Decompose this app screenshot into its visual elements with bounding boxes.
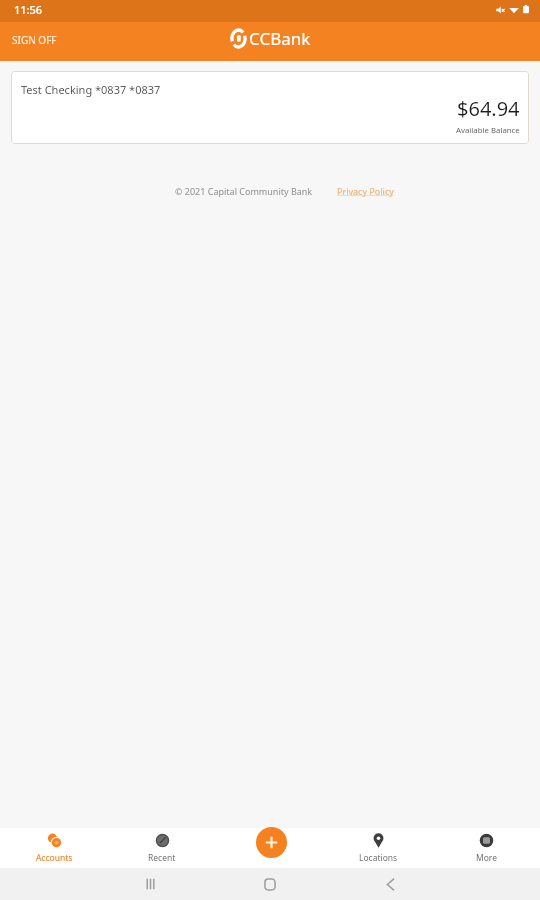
staticText: SIGN OFF (12, 33, 57, 47)
button[interactable]: Recent (108, 828, 216, 868)
staticText: Test Checking *0837 *0837 (21, 82, 161, 97)
button[interactable]: Back (372, 868, 408, 900)
button[interactable]: SIGN OFF (0, 26, 67, 58)
staticText: $64.94 (457, 95, 520, 122)
staticText: © 2021 Capital Community Bank (175, 185, 313, 197)
staticText: 11:56 (14, 2, 43, 17)
button[interactable]: Add (256, 827, 287, 858)
button[interactable]: Home (252, 868, 288, 900)
button[interactable]: Recents (132, 868, 168, 900)
staticText: Available Balance (456, 125, 520, 136)
button[interactable]: More (432, 828, 540, 868)
staticText: Recent (148, 852, 176, 864)
staticText: Locations (359, 852, 398, 864)
button[interactable]: Accounts (0, 828, 108, 868)
staticText: More (476, 852, 497, 864)
button[interactable]: Privacy Policy (337, 185, 394, 197)
staticText: Accounts (36, 852, 73, 864)
staticText: CCBank (249, 27, 311, 50)
staticText: Privacy Policy (337, 185, 394, 197)
button[interactable]: Locations (324, 828, 432, 868)
button[interactable]: Test Checking *0837 *0837 (11, 71, 529, 144)
